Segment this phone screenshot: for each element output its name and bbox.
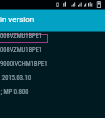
staticText: in version [0,15,35,24]
staticText: 008VZMU1BPE1 [0,32,43,40]
button[interactable]: ; MP 0.800 [0,86,105,98]
staticText: 008VZMU1BPE1 [0,32,43,40]
button[interactable]: in version [0,10,105,31]
staticText: ; MP 0.800 [1,88,29,96]
staticText: 2015.03.10 [2,74,32,82]
button[interactable]: 008VZMU1BPE1 [0,44,105,56]
staticText: 9000IVCHM1BPE1 [0,60,48,68]
other: Status indicators [56,0,105,9]
staticText: 008VZMU1BPE1 [0,46,43,54]
staticText: 008VZMU1BPE1 [0,46,43,54]
staticText: 008VZMU1BPE1 [0,32,43,40]
staticText: 008VZMU1BPE1 [0,46,43,54]
staticText: 9000IVCHM1BPE1 [0,60,48,68]
staticText: 008VZMU1BPE1 [0,32,43,40]
staticText: 008VZMU1BPE1 [0,32,43,40]
staticText: ; MP 0.800 [1,88,29,96]
staticText: 9000IVCHM1BPE1 [0,60,48,68]
button[interactable]: 008VZMU1BPE1 [0,30,105,42]
staticText: 008VZMU1BPE1 [0,46,43,54]
button[interactable]: 9000IVCHM1BPE1 [0,58,105,70]
staticText: 2015.03.10 [2,74,32,82]
staticText: 2015.03.10 [2,74,32,82]
staticText: 2015.03.10 [1,74,31,82]
staticText: 9000IVCHM1BPE1 [0,60,48,68]
staticText: ; MP 0.800 [1,88,29,96]
staticText: ; MP 0.800 [1,88,29,96]
staticText: 2015.03.10 [2,74,32,82]
staticText: ; MP 0.800 [0,88,28,96]
staticText: 9000IVCHM1BPE1 [0,60,48,68]
button[interactable]: 2015.03.10 [0,72,105,84]
staticText: 008VZMU1BPE1 [0,46,43,54]
